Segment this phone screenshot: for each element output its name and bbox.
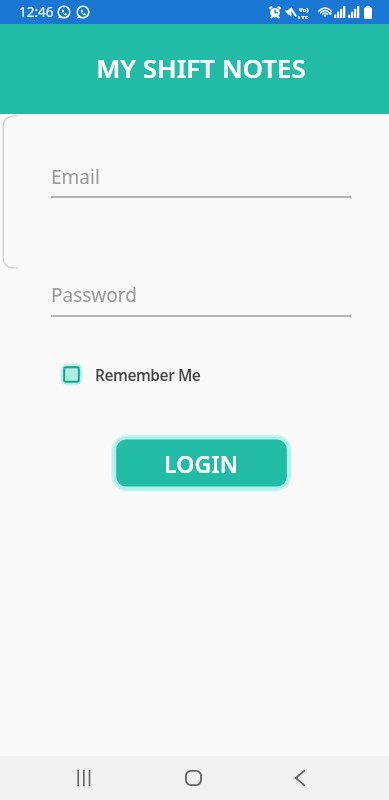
button[interactable]: Home <box>171 756 215 800</box>
button[interactable]: Remember Me <box>58 361 201 388</box>
button[interactable]: LOGIN <box>110 434 293 492</box>
staticText: 12:46 <box>19 3 54 21</box>
staticText: LOGIN <box>164 448 239 479</box>
staticText: LTE <box>298 14 309 19</box>
staticText: Remember Me <box>95 364 201 385</box>
button[interactable]: Email <box>51 164 100 190</box>
staticText: MY SHIFT NOTES <box>96 50 306 85</box>
button[interactable]: Password <box>51 282 137 308</box>
button[interactable]: Back <box>278 756 322 800</box>
staticText: Vo) <box>299 6 309 14</box>
button[interactable]: Recent apps <box>62 756 106 800</box>
